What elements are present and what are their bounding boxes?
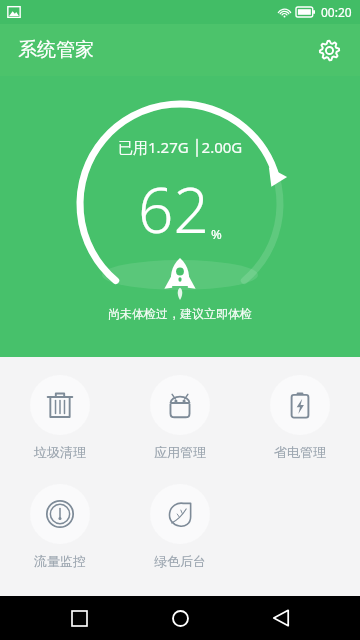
- staticText: 应用管理: [154, 444, 206, 460]
- staticText: 系统管家: [18, 38, 94, 62]
- button[interactable]: 绿色后台: [120, 480, 240, 573]
- staticText: 尚未体检过，建议立即体检: [108, 306, 252, 321]
- button[interactable]: Settings: [312, 33, 346, 67]
- button[interactable]: Back: [259, 596, 303, 640]
- staticText: 省电管理: [274, 444, 326, 460]
- staticText: 垃圾清理: [34, 444, 86, 460]
- staticText: %: [211, 225, 222, 243]
- staticText: 流量监控: [34, 553, 86, 569]
- button[interactable]: Home: [158, 596, 202, 640]
- staticText: 绿色后台: [154, 553, 206, 569]
- button[interactable]: Recents: [57, 596, 101, 640]
- staticText: 已用1.27G │2.00G: [118, 137, 243, 157]
- button[interactable]: 流量监控: [0, 480, 120, 573]
- button[interactable]: 省电管理: [240, 371, 360, 464]
- button[interactable]: 垃圾清理: [0, 371, 120, 464]
- staticText: 00:20: [321, 4, 352, 20]
- staticText: 62: [138, 167, 209, 251]
- button[interactable]: 应用管理: [120, 371, 240, 464]
